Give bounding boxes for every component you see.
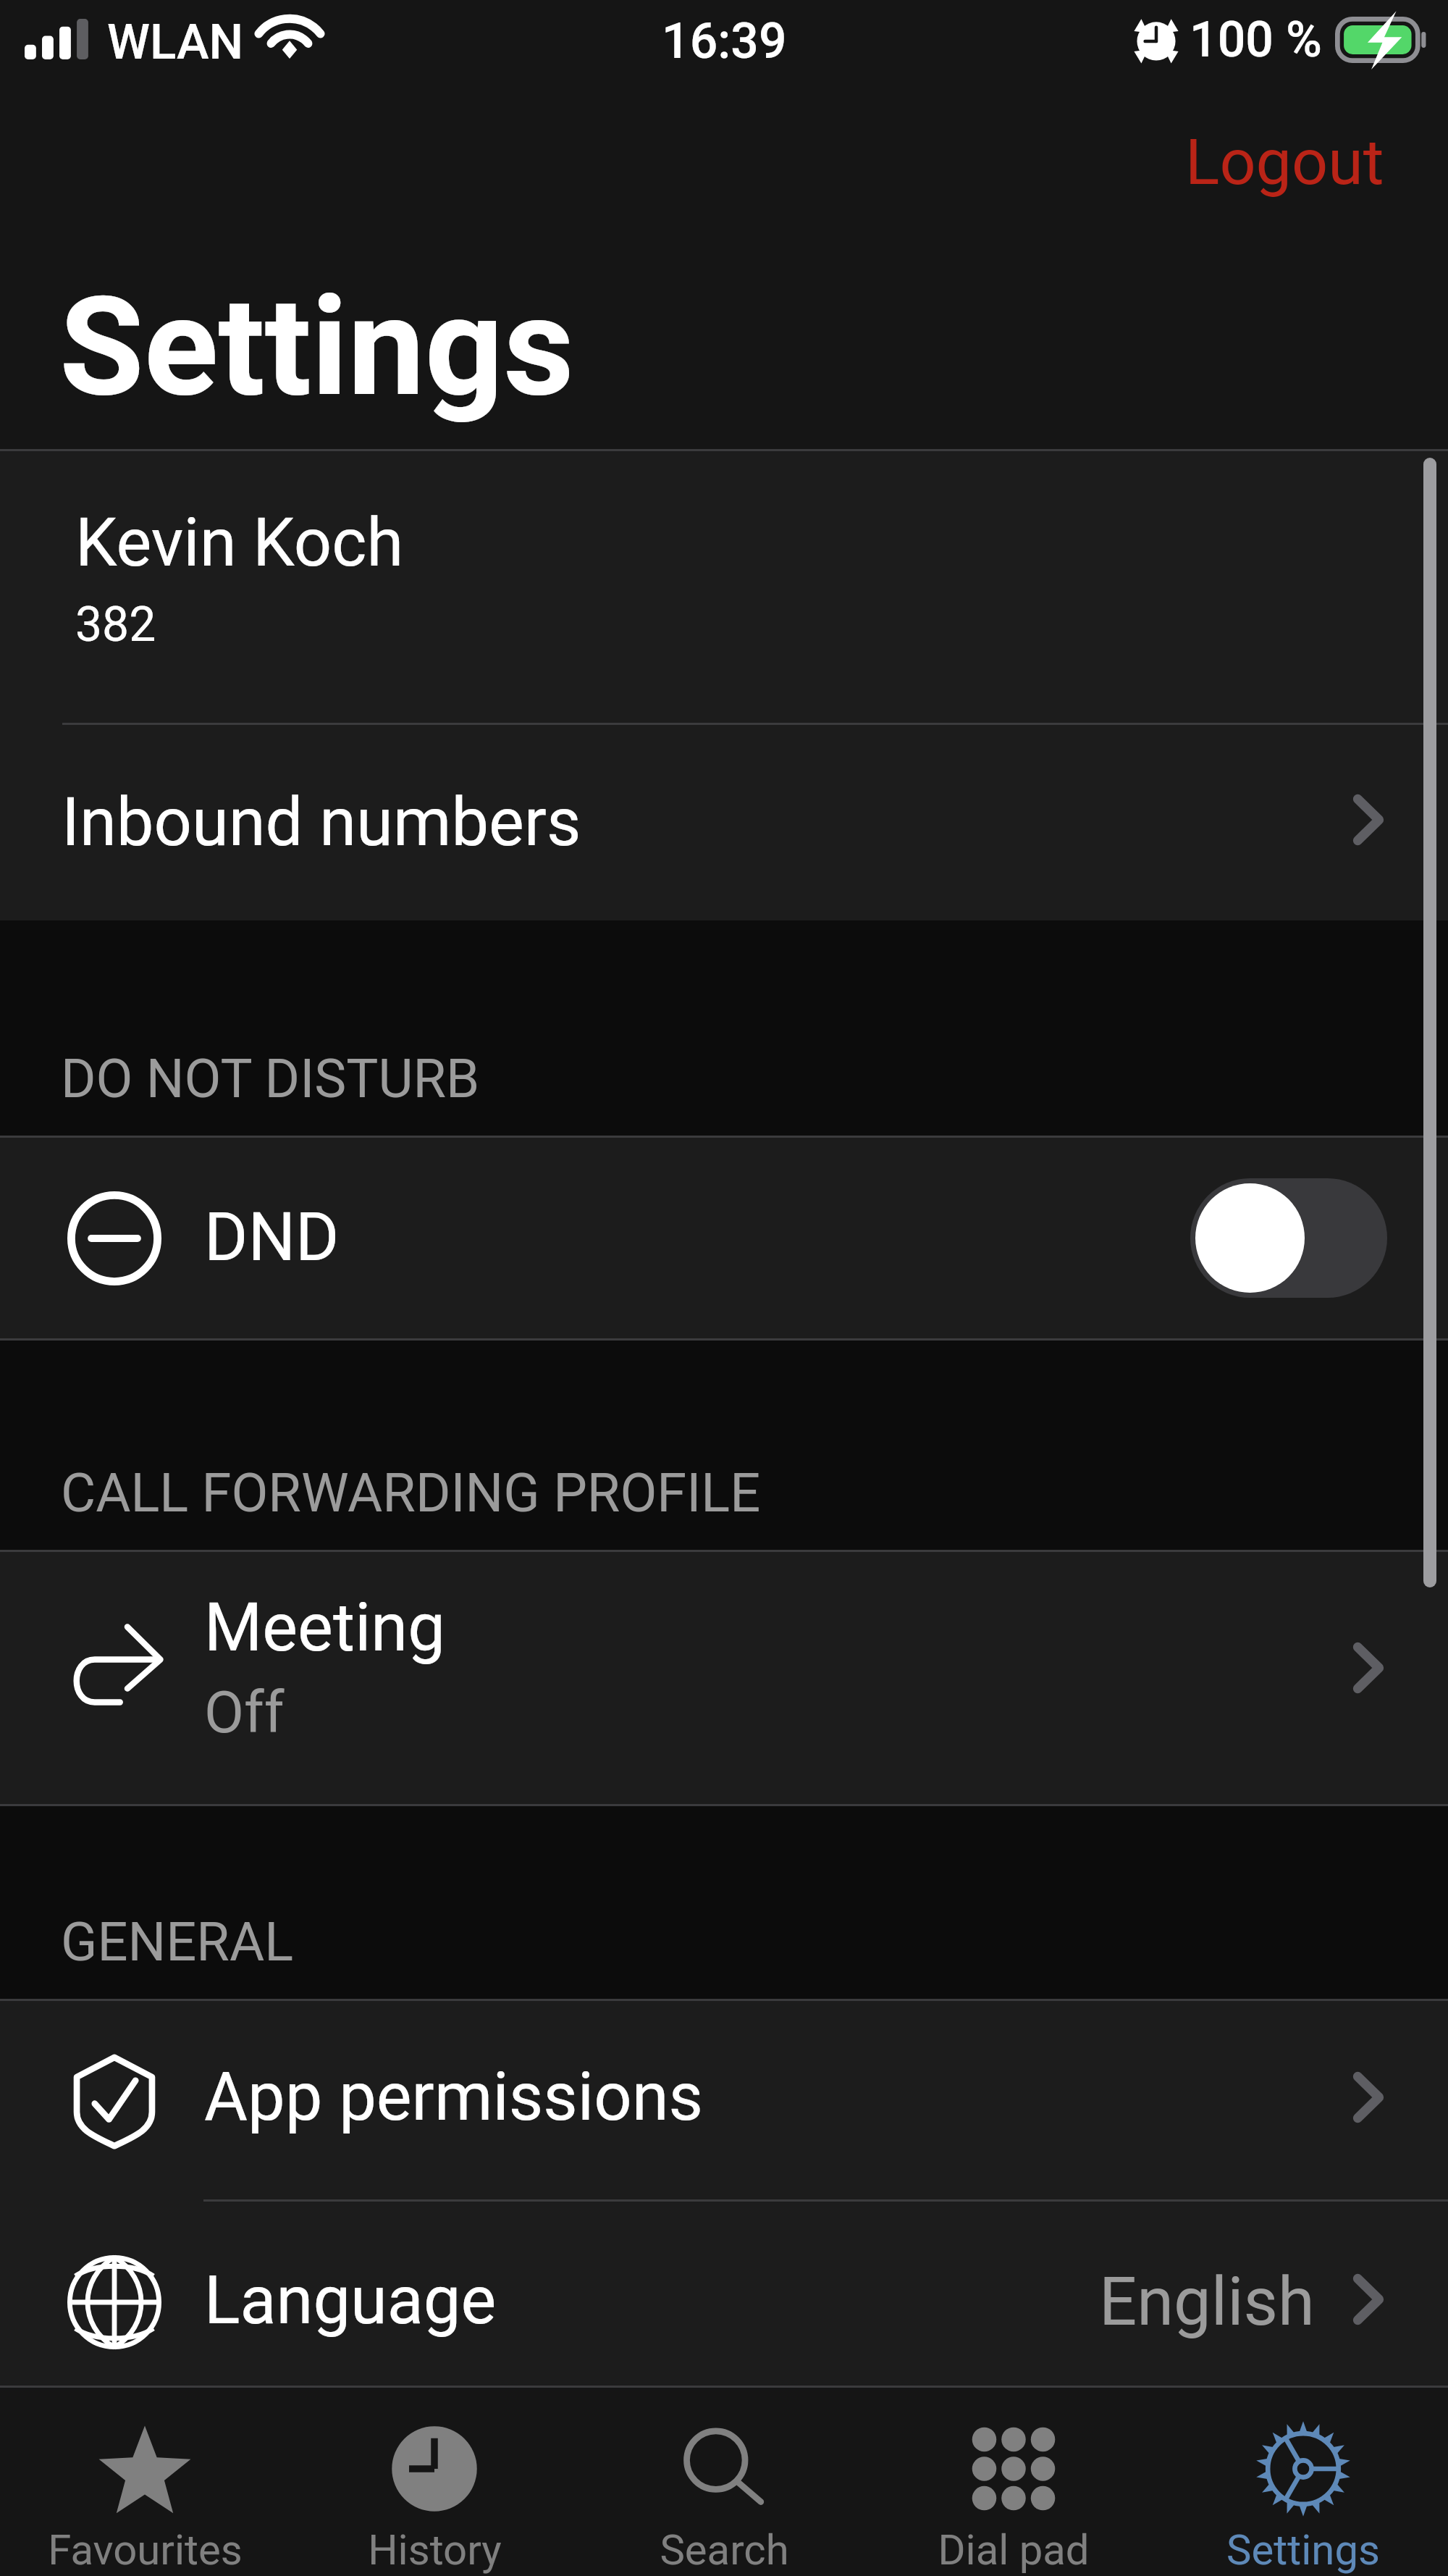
button[interactable]: Meeting xyxy=(0,1552,1448,1804)
button[interactable]: DND xyxy=(0,1138,1448,1338)
staticText: Favourites xyxy=(48,2525,243,2575)
staticText: 16:39 xyxy=(662,12,787,70)
staticText: App permissions xyxy=(204,2058,703,2136)
button[interactable]: History xyxy=(290,2388,579,2576)
button[interactable]: Inbound numbers xyxy=(0,725,1448,920)
button[interactable]: Language xyxy=(0,2202,1448,2386)
staticText: Settings xyxy=(1226,2525,1380,2575)
staticText: Logout xyxy=(1185,125,1384,199)
staticText: Search xyxy=(660,2525,789,2575)
button[interactable]: Logout xyxy=(1121,100,1448,224)
button[interactable]: Settings xyxy=(1158,2388,1448,2576)
staticText: Dial pad xyxy=(938,2525,1090,2575)
staticText: CALL FORWARDING PROFILE xyxy=(61,1461,761,1524)
staticText: WLAN xyxy=(107,14,244,71)
staticText: Inbound numbers xyxy=(62,784,581,862)
staticText: DO NOT DISTURB xyxy=(61,1047,480,1110)
button[interactable]: Search xyxy=(579,2388,869,2576)
button[interactable]: Favourites xyxy=(0,2388,290,2576)
button[interactable]: Kevin Koch xyxy=(0,451,1448,723)
button[interactable]: App permissions xyxy=(0,2001,1448,2199)
button[interactable]: Dial pad xyxy=(869,2388,1158,2576)
button[interactable]: Do not disturb toggle xyxy=(1190,1178,1387,1298)
staticText: Kevin Koch xyxy=(75,504,404,582)
staticText: Settings xyxy=(59,267,575,428)
staticText: Language xyxy=(204,2262,497,2340)
staticText: English xyxy=(1099,2263,1315,2341)
staticText: 100 % xyxy=(1190,11,1322,69)
staticText: Off xyxy=(204,1679,285,1747)
staticText: Meeting xyxy=(204,1589,445,1667)
staticText: History xyxy=(368,2525,502,2575)
staticText: GENERAL xyxy=(61,1910,294,1973)
staticText: DND xyxy=(204,1199,340,1277)
staticText: 382 xyxy=(75,597,156,653)
